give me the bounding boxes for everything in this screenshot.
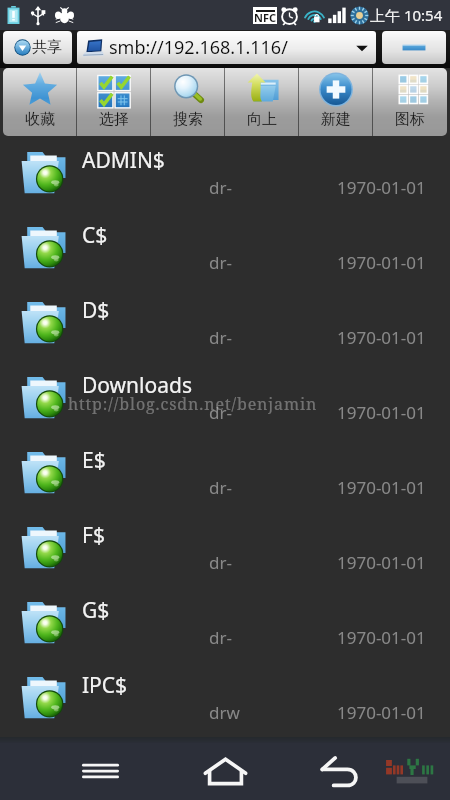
button[interactable]: smb://192.168.1.116/: [77, 31, 376, 64]
staticText: F$: [82, 521, 105, 550]
staticText: 新建: [321, 110, 351, 129]
button[interactable]: E$: [0, 445, 450, 520]
staticText: dr-: [209, 176, 232, 199]
button[interactable]: D$: [0, 295, 450, 370]
staticText: E$: [82, 446, 106, 475]
staticText: 收藏: [25, 110, 55, 129]
button[interactable]: 收藏: [3, 68, 77, 136]
staticText: 共享: [32, 38, 62, 57]
staticText: drw: [209, 701, 240, 724]
staticText: 上午 10:54: [370, 5, 443, 25]
staticText: 1970-01-01: [337, 176, 426, 199]
staticText: C$: [82, 221, 108, 250]
staticText: 1970-01-01: [337, 326, 426, 349]
staticText: dr-: [209, 401, 232, 424]
staticText: dr-: [209, 476, 232, 499]
button[interactable]: Home: [160, 743, 290, 800]
staticText: G$: [82, 596, 110, 625]
staticText: D$: [82, 296, 110, 325]
button[interactable]: Back: [290, 743, 450, 800]
staticText: 1970-01-01: [337, 551, 426, 574]
staticText: 1970-01-01: [337, 626, 426, 649]
staticText: 搜索: [173, 110, 203, 129]
staticText: Downloads: [82, 371, 192, 400]
staticText: 选择: [99, 110, 129, 129]
staticText: ADMIN$: [82, 146, 165, 175]
button[interactable]: ADMIN$: [0, 145, 450, 220]
button[interactable]: G$: [0, 595, 450, 670]
staticText: 1970-01-01: [337, 476, 426, 499]
button[interactable]: 选择: [77, 68, 151, 136]
button[interactable]: 向上: [225, 68, 299, 136]
staticText: dr-: [209, 551, 232, 574]
staticText: 1970-01-01: [337, 701, 426, 724]
staticText: dr-: [209, 251, 232, 274]
staticText: dr-: [209, 626, 232, 649]
staticText: IPC$: [82, 671, 128, 700]
button[interactable]: Disconnect: [382, 31, 446, 64]
button[interactable]: IPC$: [0, 670, 450, 737]
button[interactable]: 共享: [3, 31, 72, 64]
button[interactable]: Downloads: [0, 370, 450, 445]
staticText: dr-: [209, 326, 232, 349]
staticText: 向上: [247, 110, 277, 129]
button[interactable]: 图标: [373, 68, 447, 136]
staticText: http://blog.csdn.net/benjamin: [68, 393, 318, 415]
staticText: smb://192.168.1.116/: [109, 35, 288, 60]
button[interactable]: 新建: [299, 68, 373, 136]
button[interactable]: Menu: [0, 743, 160, 800]
staticText: NFC: [254, 10, 277, 25]
button[interactable]: F$: [0, 520, 450, 595]
staticText: 1970-01-01: [337, 401, 426, 424]
button[interactable]: C$: [0, 220, 450, 295]
staticText: 图标: [395, 110, 425, 129]
staticText: 1970-01-01: [337, 251, 426, 274]
button[interactable]: 搜索: [151, 68, 225, 136]
